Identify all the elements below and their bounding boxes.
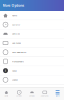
button[interactable]: Transponders [0, 57, 64, 66]
button[interactable]: Vehicles [26, 90, 38, 97]
staticText: Add Funds [12, 42, 21, 44]
staticText: Add Funds [41, 95, 49, 97]
staticText: Home [4, 95, 8, 97]
staticText: Activity [16, 95, 22, 97]
staticText: Home [12, 14, 17, 17]
button[interactable]: Auto Replenish [0, 48, 64, 57]
staticText: Vehicles [29, 95, 35, 97]
button[interactable]: i [0, 66, 64, 75]
staticText: Activity [12, 23, 20, 26]
staticText: About [12, 69, 17, 72]
staticText: Vehicles [12, 32, 20, 35]
button[interactable]: Home [0, 11, 64, 20]
button[interactable]: More [51, 90, 64, 97]
staticText: More [56, 95, 60, 97]
staticText: Logout [12, 78, 18, 81]
button[interactable]: Add Funds [38, 90, 51, 97]
staticText: i [5, 69, 6, 72]
button[interactable]: Add Funds [0, 39, 64, 48]
button[interactable]: Home [0, 90, 13, 97]
staticText: Auto Replenish [12, 51, 26, 54]
button[interactable]: Activity [13, 90, 26, 97]
staticText: Transponders [12, 60, 24, 63]
button[interactable]: Activity [0, 20, 64, 29]
staticText: More Options [2, 3, 24, 8]
button[interactable]: Vehicles [0, 29, 64, 39]
button[interactable]: Logout [0, 75, 64, 85]
